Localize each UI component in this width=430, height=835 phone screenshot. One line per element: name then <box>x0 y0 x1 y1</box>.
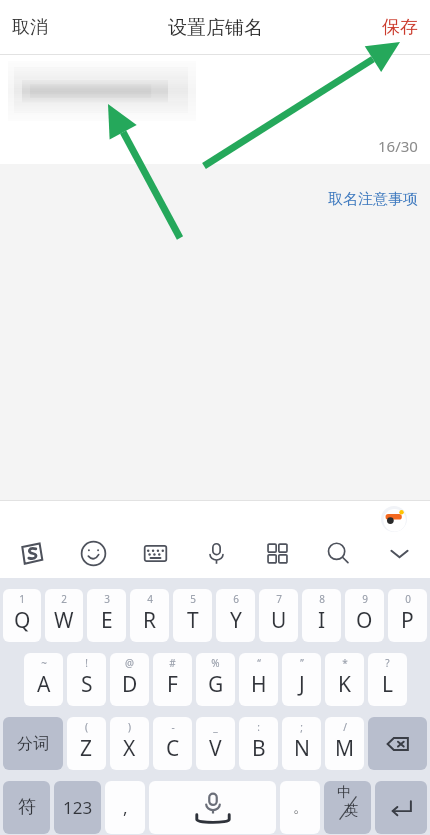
button[interactable]: Search <box>308 528 369 578</box>
staticText: W <box>54 606 74 635</box>
button[interactable]: : <box>239 717 278 770</box>
staticText: U <box>271 606 287 635</box>
button[interactable]: Hide keyboard <box>369 528 430 578</box>
button[interactable]: 0 <box>388 589 427 642</box>
staticText: D <box>122 670 138 699</box>
staticText: ( <box>85 720 88 734</box>
button[interactable]: 9 <box>345 589 384 642</box>
staticText: H <box>251 670 267 699</box>
staticText: 取消 <box>12 16 48 39</box>
staticText: V <box>209 734 222 763</box>
button[interactable]: 7 <box>259 589 298 642</box>
staticText: N <box>294 734 310 763</box>
staticText: ~ <box>41 656 47 670</box>
staticText: Y <box>230 606 242 635</box>
button[interactable]: Voice input <box>186 528 247 578</box>
button[interactable]: 4 <box>130 589 169 642</box>
button[interactable]: * <box>325 653 364 706</box>
staticText: Q <box>14 606 31 635</box>
button[interactable]: ? <box>368 653 407 706</box>
staticText: 4 <box>147 592 153 606</box>
button[interactable]: ; <box>282 717 321 770</box>
button[interactable]: Backspace <box>368 717 427 770</box>
staticText: C <box>166 734 180 763</box>
staticText: _ <box>213 720 218 734</box>
button[interactable]: 。 <box>280 781 320 834</box>
button[interactable] <box>0 59 210 129</box>
button[interactable]: More functions <box>247 528 308 578</box>
staticText: % <box>211 656 220 670</box>
staticText: O <box>356 606 373 635</box>
staticText: 6 <box>233 592 239 606</box>
button[interactable]: 取消 <box>0 8 60 47</box>
button[interactable]: 6 <box>216 589 255 642</box>
button[interactable]: “ <box>239 653 278 706</box>
staticText: , <box>123 796 128 819</box>
button[interactable]: Enter <box>375 781 427 834</box>
button[interactable]: 8 <box>302 589 341 642</box>
button[interactable]: 保存 <box>370 8 430 47</box>
staticText: / <box>343 720 347 734</box>
staticText: A <box>37 670 51 699</box>
button[interactable]: ( <box>67 717 106 770</box>
staticText: ! <box>85 656 88 670</box>
button[interactable]: 3 <box>87 589 126 642</box>
button[interactable]: # <box>153 653 192 706</box>
button[interactable]: ” <box>282 653 321 706</box>
staticText: 3 <box>104 592 110 606</box>
staticText: 符 <box>18 796 36 819</box>
button[interactable]: 1 <box>3 589 41 642</box>
staticText: “ <box>257 656 261 670</box>
button[interactable]: % <box>196 653 235 706</box>
staticText: I <box>318 606 326 635</box>
button[interactable]: / <box>325 717 364 770</box>
staticText: X <box>123 734 136 763</box>
button[interactable]: Space <box>149 781 276 834</box>
button[interactable]: ! <box>67 653 106 706</box>
staticText: M <box>335 734 355 763</box>
button[interactable]: Keyboard layout <box>124 528 186 578</box>
button[interactable]: - <box>153 717 192 770</box>
staticText: 5 <box>190 592 196 606</box>
button[interactable]: , <box>105 781 145 834</box>
button[interactable]: 2 <box>45 589 83 642</box>
staticText: 8 <box>319 592 325 606</box>
button[interactable]: Sticker <box>381 506 407 532</box>
staticText: 英 <box>344 802 358 820</box>
staticText: 9 <box>362 592 368 606</box>
staticText: @ <box>125 656 134 670</box>
staticText: 分词 <box>17 734 49 754</box>
staticText: 2 <box>61 592 67 606</box>
staticText: F <box>167 670 178 699</box>
button[interactable]: Emoji <box>62 528 124 578</box>
button[interactable]: Switch Chinese English <box>324 781 371 834</box>
staticText: R <box>143 606 157 635</box>
staticText: 保存 <box>382 16 418 39</box>
staticText: 设置店铺名 <box>168 16 263 40</box>
staticText: ; <box>300 720 303 734</box>
staticText: 。 <box>293 798 308 817</box>
button[interactable]: 123 <box>54 781 101 834</box>
staticText: 7 <box>276 592 282 606</box>
staticText: L <box>382 670 394 699</box>
staticText: T <box>187 606 199 635</box>
staticText: 1 <box>19 592 25 606</box>
staticText: ? <box>385 656 390 670</box>
button[interactable]: 分词 <box>3 717 63 770</box>
staticText: 0 <box>405 592 411 606</box>
staticText: Z <box>80 734 93 763</box>
button[interactable]: 符 <box>3 781 50 834</box>
staticText: # <box>169 656 176 670</box>
staticText: E <box>101 606 113 635</box>
staticText: K <box>338 670 351 699</box>
button[interactable]: Sogou input <box>0 528 62 578</box>
button[interactable]: 取名注意事项 <box>316 184 430 215</box>
button[interactable]: @ <box>110 653 149 706</box>
staticText: G <box>208 670 224 699</box>
button[interactable]: _ <box>196 717 235 770</box>
staticText: : <box>257 720 260 734</box>
button[interactable]: ~ <box>24 653 63 706</box>
staticText: 123 <box>63 796 93 819</box>
button[interactable]: ) <box>110 717 149 770</box>
button[interactable]: 5 <box>173 589 212 642</box>
